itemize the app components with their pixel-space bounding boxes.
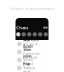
staticText: 8:12 bbox=[44, 51, 47, 53]
button[interactable]: Compose bbox=[45, 27, 48, 29]
staticText: 9:41 bbox=[44, 43, 47, 45]
button[interactable]: Story bbox=[38, 32, 42, 36]
staticText: Priya bbox=[23, 62, 30, 66]
button[interactable]: Story bbox=[44, 32, 48, 36]
staticText: See you at seven bbox=[23, 42, 37, 50]
button[interactable]: Design Team bbox=[15, 48, 48, 56]
button[interactable]: Story bbox=[33, 32, 37, 36]
staticText: Maya Chen bbox=[23, 38, 39, 42]
button[interactable]: Camera bbox=[43, 27, 45, 29]
staticText: Yest bbox=[44, 59, 47, 61]
button[interactable]: Story bbox=[22, 32, 26, 36]
button[interactable]: Priya bbox=[15, 64, 48, 72]
staticText: Designed for every conversation bbox=[10, 7, 54, 11]
staticText: Mon bbox=[44, 67, 47, 69]
button[interactable]: Jonas bbox=[15, 56, 48, 64]
staticText: Design Team bbox=[23, 45, 33, 52]
staticText: Jonas bbox=[23, 54, 31, 58]
staticText: Pushed the new build bbox=[23, 52, 40, 59]
staticText: Thanks so much! bbox=[23, 66, 35, 72]
button[interactable]: Maya Chen bbox=[15, 40, 48, 48]
button[interactable]: Story bbox=[27, 32, 31, 36]
button[interactable]: Story bbox=[16, 32, 20, 36]
staticText: Chats bbox=[16, 25, 28, 30]
staticText: Sounds perfect bbox=[23, 58, 33, 66]
